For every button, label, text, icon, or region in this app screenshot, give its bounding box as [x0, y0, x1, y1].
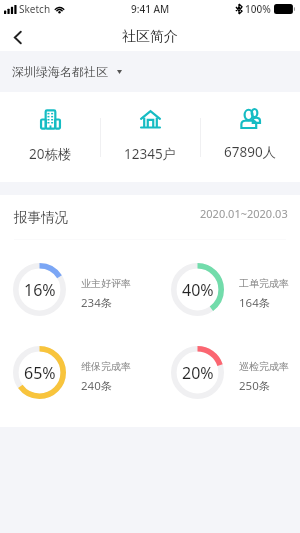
- staticText: 工单完成率: [239, 277, 289, 290]
- staticText: 16%: [24, 279, 56, 301]
- button[interactable]: 16%: [0, 263, 158, 316]
- staticText: 深圳绿海名都社区: [12, 64, 108, 79]
- staticText: 20%: [182, 362, 214, 384]
- staticText: 40%: [182, 279, 214, 301]
- staticText: 240条: [81, 378, 113, 394]
- button[interactable]: Back: [5, 24, 31, 50]
- button[interactable]: 12345户: [101, 92, 200, 182]
- button[interactable]: 67890人: [201, 92, 300, 182]
- button[interactable]: 40%: [158, 263, 300, 316]
- staticText: 2020.01~2020.03: [200, 206, 288, 221]
- staticText: 67890人: [224, 143, 277, 161]
- button[interactable]: 深圳绿海名都社区: [0, 51, 300, 92]
- staticText: 巡检完成率: [239, 360, 289, 373]
- staticText: 12345户: [124, 145, 177, 163]
- button[interactable]: 20栋楼: [0, 92, 100, 182]
- staticText: 20栋楼: [29, 145, 72, 163]
- staticText: 9:41 AM: [131, 2, 170, 16]
- staticText: 234条: [81, 295, 113, 311]
- staticText: 维保完成率: [81, 360, 131, 373]
- button[interactable]: 65%: [0, 346, 158, 399]
- button[interactable]: 20%: [158, 346, 300, 399]
- staticText: 250条: [239, 378, 271, 394]
- staticText: 65%: [24, 362, 56, 384]
- staticText: 社区简介: [122, 28, 178, 46]
- staticText: 100%: [245, 2, 271, 16]
- staticText: 业主好评率: [81, 277, 131, 290]
- staticText: 164条: [239, 295, 271, 311]
- staticText: 报事情况: [14, 209, 68, 226]
- staticText: Sketch: [19, 2, 51, 16]
